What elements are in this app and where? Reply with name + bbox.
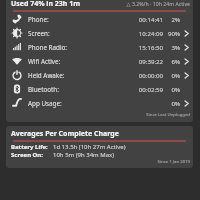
button[interactable]: Held Awake: [6,68,193,82]
staticText: 10:24:09 [133,29,163,37]
button[interactable]: Bluetooth: [6,82,193,96]
staticText: Since 1 Jan 2019 [130,158,190,200]
staticText: Held Awake: [28,71,65,80]
button[interactable]: App Usage: [6,96,193,110]
staticText: 0% [167,85,180,93]
staticText: 1d 13.5h (10h 27m Active) [53,143,126,151]
staticText: Screen: [28,29,50,38]
staticText: 6% [167,57,180,65]
staticText: 00:02:59 [133,85,163,93]
button[interactable]: Screen: [6,26,193,40]
staticText: Wifi Active: [28,57,61,66]
staticText: Bluetooth: [28,85,59,94]
staticText: 09:39:22 [133,57,163,65]
button[interactable]: Wifi Active: [6,54,193,68]
staticText: Since Last Unplugged [120,111,190,200]
staticText: 90% [167,29,180,37]
button[interactable]: Phone: [6,12,193,26]
staticText: 3% [167,43,180,51]
staticText: 0% [167,99,180,107]
staticText: Battery Life: [11,143,53,151]
staticText: 2% [167,15,180,23]
button[interactable]: Phone Radio: [6,40,193,54]
staticText: Phone: [28,15,49,24]
staticText: Used 74% in 23h 1m [11,0,81,9]
staticText: App Usage: [28,99,62,108]
staticText: 10h 5m (9h 34m Max) [53,151,115,159]
staticText: 15:16:50 [133,43,163,51]
staticText: Phone Radio: [28,43,68,52]
staticText: Averages Per Complete Charge [11,129,119,139]
staticText: △ 3.2%/h · 10h 24m Active [100,0,190,200]
staticText: 0% [167,71,180,79]
staticText: Screen On: [11,151,53,159]
staticText: 00:14:41 [133,15,163,23]
staticText: 00:00:00 [133,71,163,79]
